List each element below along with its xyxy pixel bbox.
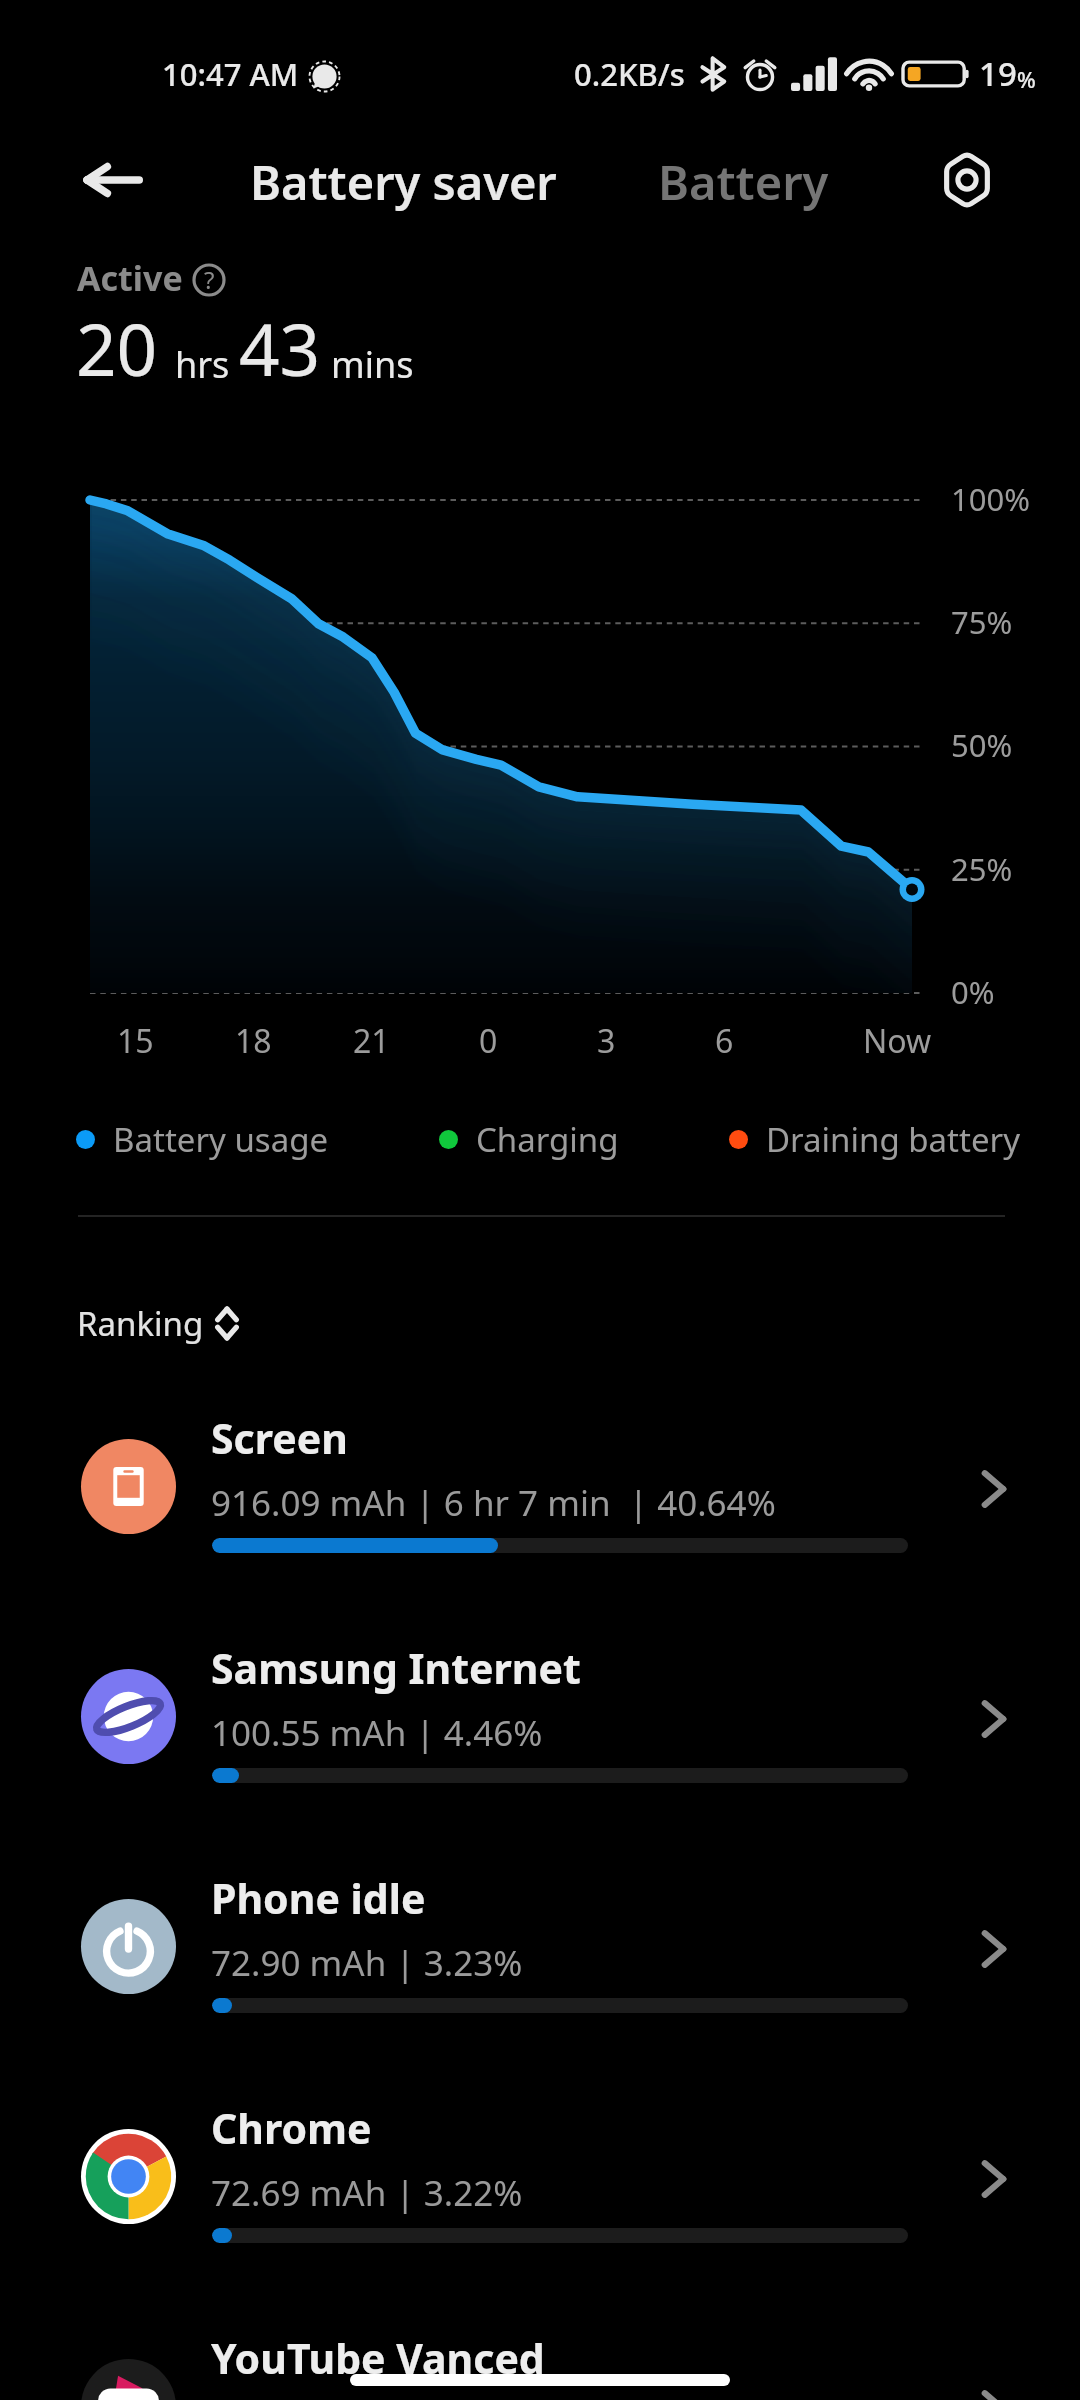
staticText: 20: [76, 300, 158, 397]
staticText: Ranking: [77, 1301, 204, 1346]
staticText: 10:47 AM: [162, 53, 299, 95]
button[interactable]: Back: [66, 134, 158, 226]
staticText: Screen: [211, 1410, 348, 1466]
staticText: hrs: [175, 340, 230, 389]
button[interactable]: YouTube Vanced: [0, 2329, 1080, 2400]
staticText: Battery usage: [113, 1117, 329, 1162]
staticText: 100%: [951, 478, 1030, 520]
staticText: 72.90 mAh | 3.23%: [211, 1939, 523, 1987]
staticText: 3: [597, 1019, 616, 1063]
staticText: Now: [863, 1019, 932, 1063]
staticText: 43: [239, 300, 321, 397]
staticText: Active: [77, 255, 183, 301]
staticText: 25%: [951, 848, 1013, 890]
staticText: 19: [979, 51, 1017, 96]
staticText: mins: [331, 340, 414, 389]
button[interactable]: Battery: [658, 136, 829, 228]
staticText: 72.69 mAh | 3.22%: [211, 2169, 523, 2217]
button[interactable]: Ranking: [77, 1301, 240, 1346]
staticText: 916.09 mAh | 6 hr 7 min | 40.64%: [211, 1479, 776, 1527]
staticText: 50%: [951, 724, 1013, 766]
staticText: 75%: [951, 601, 1013, 643]
staticText: Battery: [658, 150, 829, 214]
staticText: 21: [353, 1019, 390, 1063]
staticText: Draining battery: [766, 1117, 1020, 1162]
button[interactable]: Phone idle: [0, 1869, 1080, 2069]
staticText: 0.2KB/s: [574, 53, 685, 95]
staticText: Battery saver: [250, 150, 557, 214]
staticText: Charging: [476, 1117, 619, 1162]
staticText: 100.55 mAh | 4.46%: [211, 1709, 543, 1757]
button[interactable]: Samsung Internet: [0, 1639, 1080, 1839]
staticText: 0: [479, 1019, 498, 1063]
staticText: Phone idle: [211, 1870, 426, 1926]
staticText: Chrome: [211, 2100, 372, 2156]
button[interactable]: Screen: [0, 1409, 1080, 1609]
staticText: 0%: [951, 971, 995, 1013]
staticText: 18: [235, 1019, 272, 1063]
staticText: Samsung Internet: [211, 1640, 581, 1696]
button[interactable]: Chrome: [0, 2099, 1080, 2299]
staticText: %: [1017, 64, 1036, 94]
staticText: 15: [117, 1019, 154, 1063]
staticText: ?: [204, 263, 215, 296]
button[interactable]: Settings: [921, 134, 1013, 226]
button[interactable]: Battery saver: [250, 136, 557, 228]
staticText: 6: [715, 1019, 734, 1063]
staticText: YouTube Vanced: [211, 2330, 545, 2386]
